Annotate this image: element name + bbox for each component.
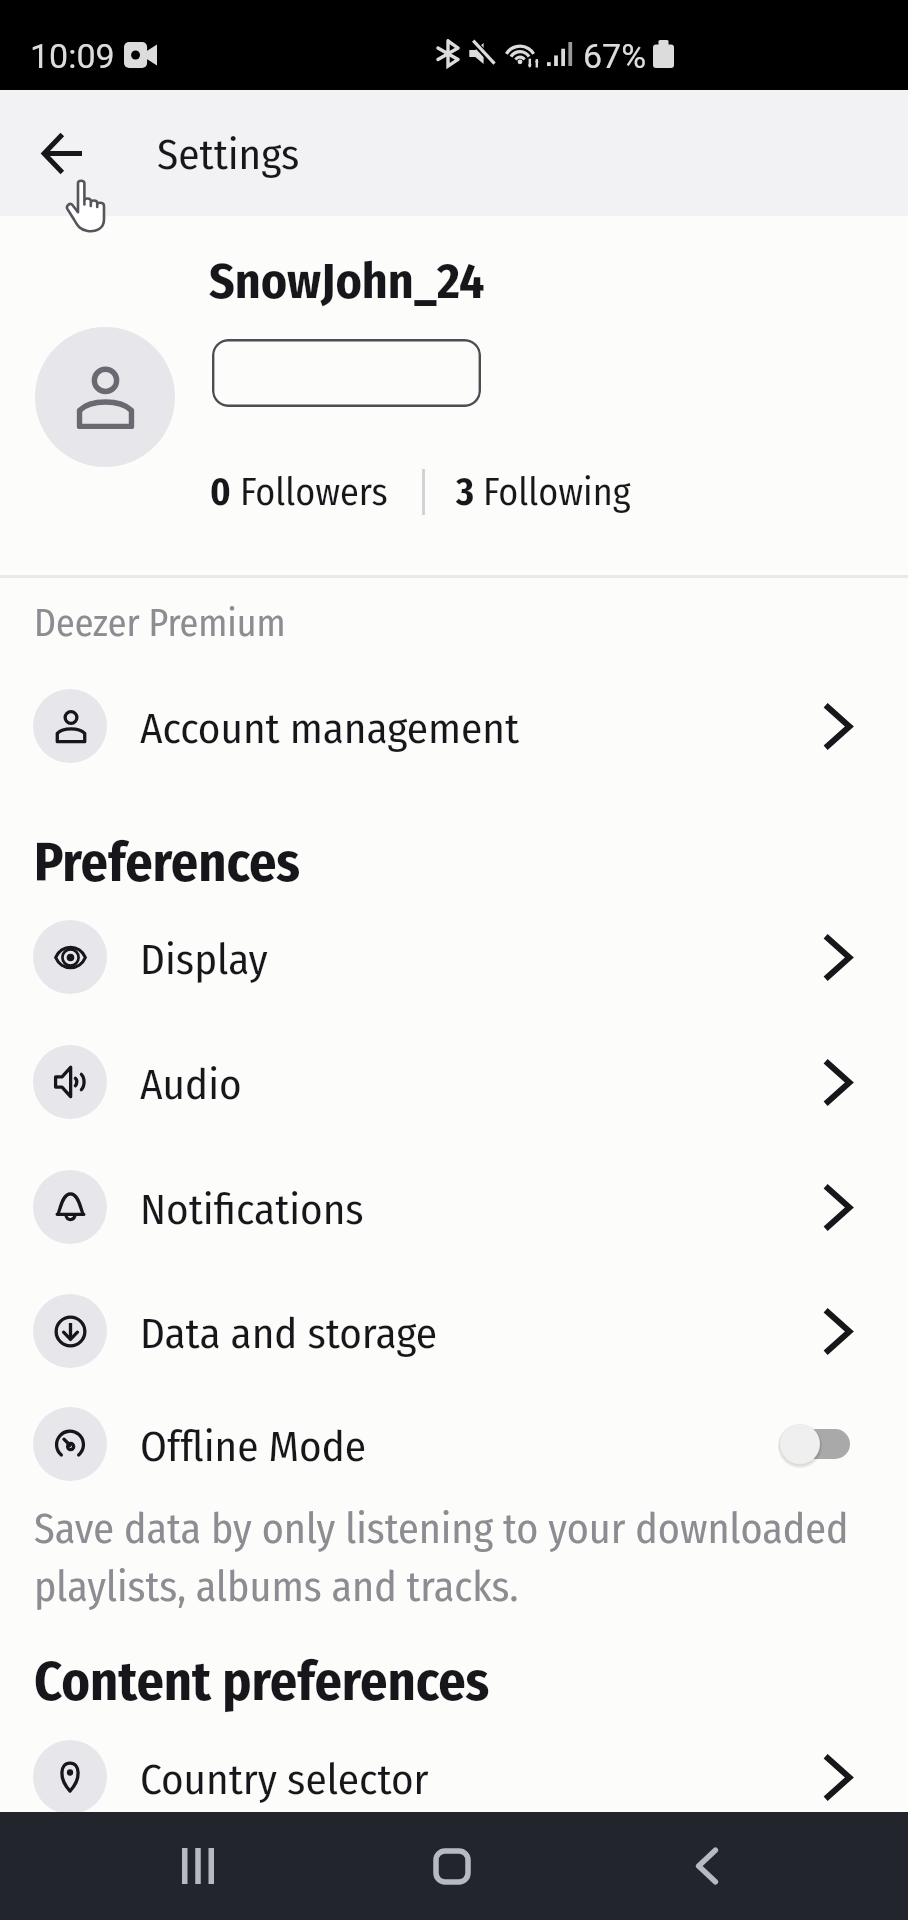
button[interactable]: Notifications: [0, 1145, 908, 1269]
staticText: Data and storage: [140, 1306, 437, 1360]
button[interactable]: Recents: [148, 1820, 248, 1912]
staticText: Followers: [240, 468, 388, 516]
staticText: Settings: [157, 127, 300, 181]
button[interactable]: Account management: [0, 664, 908, 788]
staticText: 0: [210, 468, 231, 516]
staticText: 3: [456, 468, 474, 516]
button[interactable]: Offline Mode: [0, 1382, 908, 1506]
staticText: Account management: [140, 701, 519, 755]
button[interactable]: Country selector: [0, 1715, 908, 1839]
button[interactable]: Home: [402, 1820, 502, 1912]
button[interactable]: Audio: [0, 1020, 908, 1144]
staticText: Display: [140, 932, 268, 986]
staticText: SnowJohn_24: [209, 250, 485, 312]
button[interactable]: Edit profile: [212, 339, 481, 407]
staticText: Following: [483, 468, 631, 516]
staticText: Content preferences: [34, 1647, 490, 1714]
button[interactable]: Back: [21, 113, 101, 193]
button[interactable]: Back: [657, 1820, 757, 1912]
staticText: Save data by only listening to your down…: [34, 1498, 854, 1614]
staticText: Offline Mode: [140, 1419, 366, 1473]
button[interactable]: Data and storage: [0, 1269, 908, 1393]
button[interactable]: 3: [456, 468, 631, 516]
staticText: Preferences: [34, 828, 300, 895]
staticText: Country selector: [140, 1752, 429, 1806]
button[interactable]: Profile picture: [35, 327, 175, 467]
staticText: 10:09: [30, 36, 115, 76]
button[interactable]: 0: [210, 468, 388, 516]
staticText: Audio: [140, 1057, 242, 1111]
button[interactable]: Display: [0, 895, 908, 1019]
staticText: Notifications: [140, 1182, 364, 1236]
staticText: Deezer Premium: [34, 599, 286, 646]
staticText: 67%: [583, 36, 647, 76]
